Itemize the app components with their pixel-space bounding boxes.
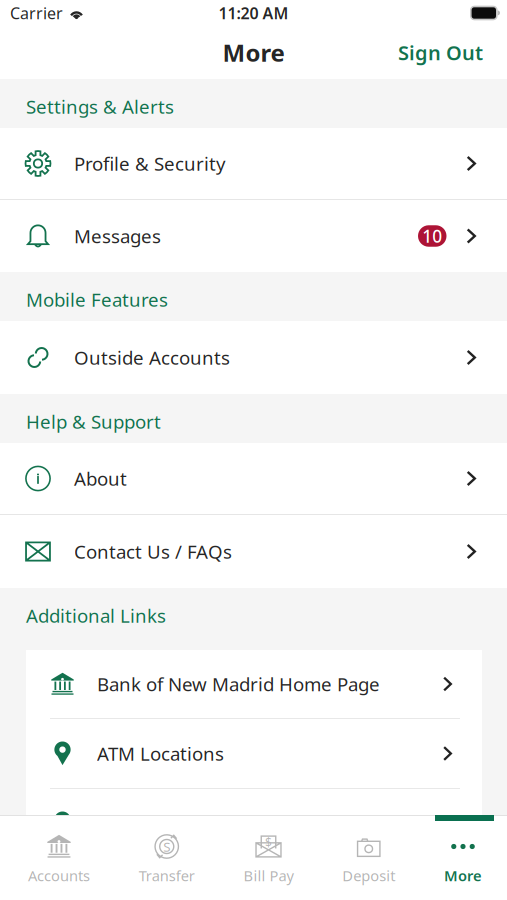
button[interactable]: Profile & Security <box>0 128 507 199</box>
button[interactable]: ATM Locations <box>26 719 482 788</box>
button[interactable]: About <box>0 443 507 514</box>
button[interactable]: Community <box>26 789 482 858</box>
staticText: Transfer <box>139 866 195 885</box>
staticText: Messages <box>74 224 161 248</box>
staticText: Outside Accounts <box>74 345 230 370</box>
staticText: More <box>444 866 482 885</box>
button[interactable]: Contact Us / FAQs <box>0 515 507 588</box>
staticText: $ <box>265 834 272 850</box>
staticText: Community <box>97 811 200 836</box>
button[interactable]: Deposit <box>342 832 395 883</box>
staticText: Contact Us / FAQs <box>74 539 232 564</box>
staticText: Settings & Alerts <box>26 94 174 119</box>
staticText: Help & Support <box>26 409 161 434</box>
staticText: Deposit <box>342 866 395 885</box>
staticText: ATM Locations <box>97 741 224 766</box>
button[interactable]: More <box>444 832 482 883</box>
staticText: Bill Pay <box>243 866 293 885</box>
staticText: Mobile Features <box>26 287 168 312</box>
staticText: Bank of New Madrid Home Page <box>97 672 380 696</box>
staticText: Carrier <box>10 2 63 24</box>
button[interactable]: Outside Accounts <box>0 321 507 394</box>
button[interactable]: Bank of New Madrid Home Page <box>26 650 482 718</box>
button[interactable]: $ <box>243 832 293 883</box>
staticText: 11:20 AM <box>218 2 288 24</box>
staticText: Sign Out <box>398 39 483 66</box>
staticText: More <box>222 37 284 68</box>
staticText: Accounts <box>28 866 90 885</box>
staticText: S <box>163 838 170 855</box>
button[interactable]: Accounts <box>28 832 90 883</box>
button[interactable]: S <box>139 832 195 883</box>
button[interactable]: Sign Out <box>386 29 495 76</box>
staticText: 10 <box>422 224 442 247</box>
staticText: About <box>74 466 127 491</box>
staticText: Profile & Security <box>74 151 226 176</box>
staticText: Additional Links <box>26 603 166 628</box>
button[interactable]: Messages <box>0 200 507 272</box>
